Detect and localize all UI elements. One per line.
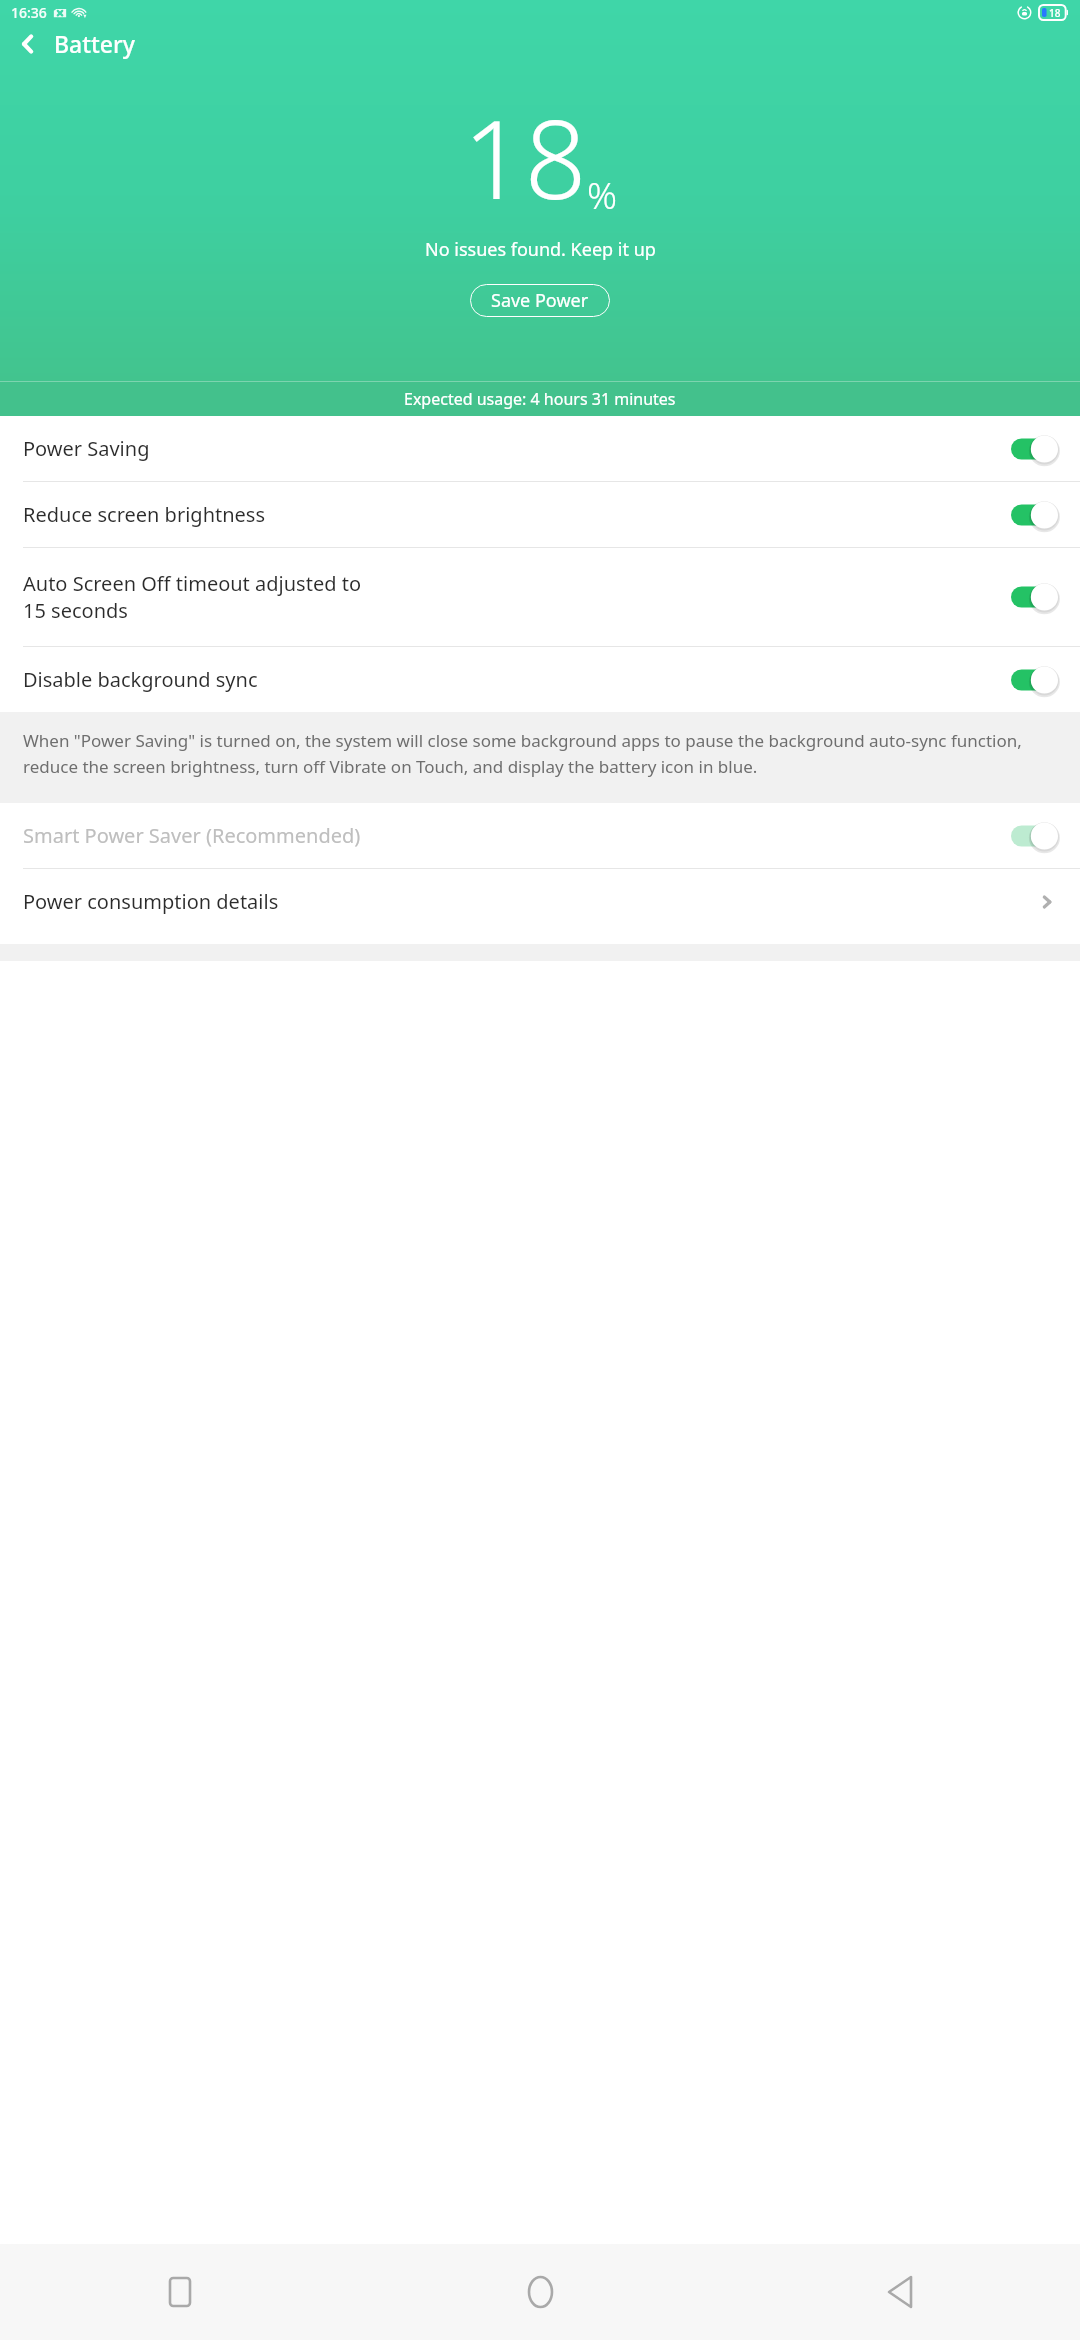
button[interactable]: Recent apps: [0, 2244, 360, 2340]
staticText: Reduce screen brightness: [23, 501, 1011, 528]
button[interactable]: Back: [720, 2244, 1080, 2340]
button[interactable]: Save Power: [470, 284, 610, 317]
staticText: %: [587, 169, 618, 219]
staticText: 18: [1049, 6, 1061, 20]
staticText: Smart Power Saver (Recommended): [23, 822, 1011, 849]
staticText: Power Saving: [23, 435, 1011, 462]
button[interactable]: Reduce screen brightness: [0, 482, 1080, 547]
staticText: Battery: [54, 28, 135, 59]
staticText: Expected usage: 4 hours 31 minutes: [404, 388, 676, 410]
button[interactable]: Home: [360, 2244, 720, 2340]
button[interactable]: Auto Screen Off timeout adjusted to 15 s…: [0, 548, 1080, 646]
button[interactable]: Power Saving: [0, 416, 1080, 481]
staticText: 16:36: [11, 3, 47, 22]
staticText: Auto Screen Off timeout adjusted to 15 s…: [23, 570, 1011, 624]
staticText: Power consumption details: [23, 888, 1038, 915]
button[interactable]: Back: [6, 25, 50, 62]
button[interactable]: Disable background sync: [0, 647, 1080, 712]
button[interactable]: Smart Power Saver (Recommended): [0, 803, 1080, 868]
button[interactable]: Power consumption details: [0, 869, 1080, 934]
staticText: Save Power: [491, 288, 589, 313]
staticText: Disable background sync: [23, 666, 1011, 693]
staticText: 18: [463, 84, 587, 231]
staticText: When "Power Saving" is turned on, the sy…: [23, 729, 1062, 778]
staticText: No issues found. Keep it up: [425, 237, 656, 262]
